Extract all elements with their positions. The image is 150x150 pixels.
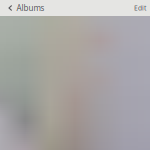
- button[interactable]: Albums: [0, 0, 50, 16]
- button[interactable]: Edit: [128, 0, 150, 16]
- staticText: Edit: [134, 4, 146, 12]
- staticText: Albums: [16, 3, 44, 13]
